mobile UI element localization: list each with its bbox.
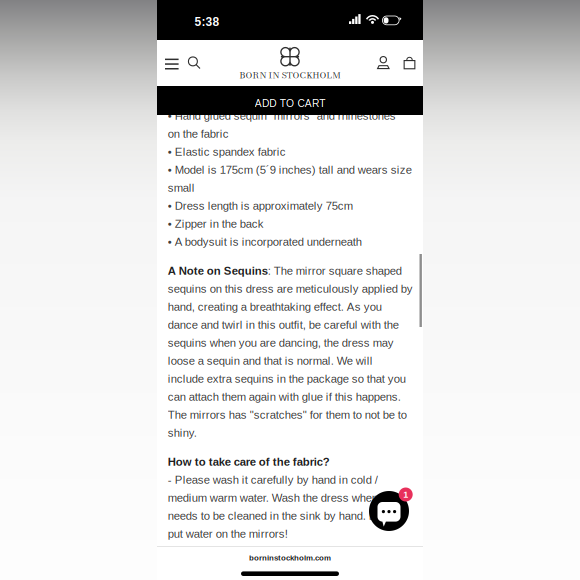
button[interactable]: Account — [372, 49, 394, 75]
staticText: loose a sequin and that is normal. We wi… — [168, 354, 373, 367]
staticText: The mirrors has "scratches" for them to … — [168, 408, 407, 421]
staticText: medium warm water. Wash the dress when i… — [168, 491, 387, 504]
staticText: How to take care of the fabric? — [168, 455, 330, 468]
button[interactable]: Search — [183, 50, 204, 75]
staticText: needs to be cleaned in the sink by hand.… — [168, 509, 394, 522]
staticText: shiny. — [168, 426, 197, 439]
staticText: - Please wash it carefully by hand in co… — [168, 473, 378, 486]
staticText: 1 — [403, 489, 408, 499]
staticText: borninstockholm.com — [249, 553, 331, 562]
button[interactable]: ADD TO CART — [157, 86, 423, 115]
staticText: small — [168, 181, 195, 194]
staticText: : The mirror square shaped — [268, 264, 402, 277]
button[interactable]: Chat — [367, 479, 411, 527]
staticText: • Model is 175cm (5´9 inches) tall and w… — [168, 163, 412, 176]
staticText: • Hand glued sequin "mirrors" and rhines… — [168, 109, 396, 122]
button[interactable]: Menu — [161, 51, 183, 76]
staticText: on the fabric — [168, 127, 229, 140]
staticText: sequins when you are dancing, the dress … — [168, 336, 394, 349]
staticText: can attach them again with glue if this … — [168, 390, 401, 403]
staticText: include extra sequins in the package so … — [168, 372, 406, 385]
staticText: • Elastic spandex fabric — [168, 145, 286, 158]
staticText: • A bodysuit is incorporated underneath — [168, 235, 362, 248]
staticText: BORN IN STOCKHOLM — [239, 68, 340, 82]
staticText: • Zipper in the back — [168, 217, 264, 230]
staticText: put water on the mirrors! — [168, 527, 288, 540]
staticText: dance and twirl in this outfit, be caref… — [168, 318, 399, 331]
button[interactable]: BORN IN STOCKHOLM — [225, 47, 355, 82]
staticText: hand, creating a breathtaking effect. As… — [168, 300, 382, 313]
staticText: 5:38 — [194, 15, 219, 29]
staticText: sequins on this dress are meticulously a… — [168, 282, 413, 295]
staticText: A Note on Sequins — [168, 264, 268, 277]
button[interactable]: Cart — [399, 49, 420, 75]
staticText: ADD TO CART — [255, 98, 325, 109]
staticText: • Dress length is approximately 75cm — [168, 199, 353, 212]
